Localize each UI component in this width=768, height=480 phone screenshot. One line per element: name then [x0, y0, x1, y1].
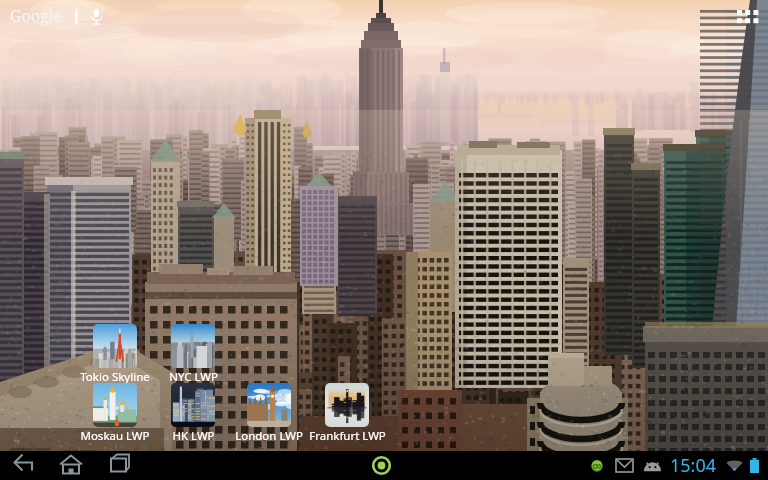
- button[interactable]: Tokio Skyline: [75, 324, 155, 385]
- button[interactable]: London LWP: [229, 383, 309, 444]
- staticText: Tokio Skyline: [80, 369, 150, 385]
- staticText: Moskau LWP: [80, 428, 150, 444]
- button[interactable]: Recent apps: [97, 451, 141, 480]
- button[interactable]: Apps: [737, 8, 759, 26]
- button[interactable]: HK LWP: [153, 383, 233, 444]
- button[interactable]: Moskau LWP: [75, 383, 155, 444]
- button[interactable]: Back: [2, 451, 46, 480]
- button[interactable]: NYC LWP: [153, 324, 233, 385]
- staticText: Frankfurt LWP: [309, 428, 386, 444]
- button[interactable]: Google: [10, 3, 103, 29]
- staticText: 15:04: [670, 453, 717, 478]
- staticText: HK LWP: [172, 428, 215, 444]
- button[interactable]: Frankfurt LWP: [307, 383, 387, 444]
- staticText: NYC LWP: [169, 369, 218, 385]
- staticText: Google: [10, 5, 63, 27]
- button[interactable]: Home: [49, 451, 93, 480]
- staticText: London LWP: [235, 428, 303, 444]
- button[interactable]: Record: [370, 454, 393, 477]
